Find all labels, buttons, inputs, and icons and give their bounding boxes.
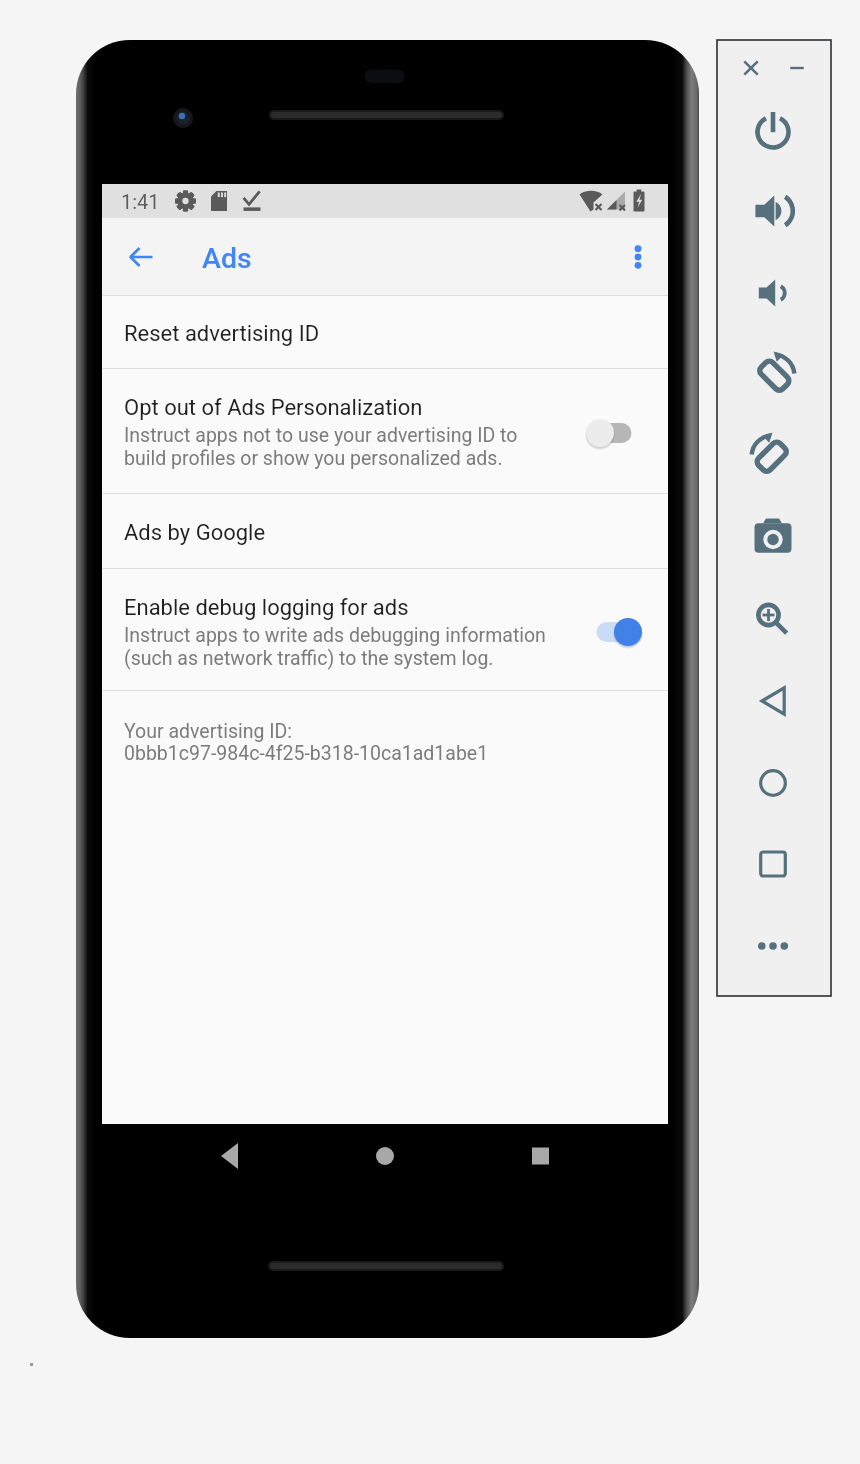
button[interactable]: Navigate up [116,232,166,282]
button[interactable]: Rotate right [747,430,799,482]
button[interactable]: Close [725,42,777,94]
button[interactable]: Overview [747,838,799,890]
staticText: Instruct apps to write ads debugging inf… [124,624,546,669]
button[interactable]: Reset advertising ID [102,296,668,368]
staticText: Your advertising ID: 0bbb1c97-984c-4f25-… [124,720,489,765]
button[interactable]: Minimize [771,42,823,94]
button[interactable]: More options [613,232,663,282]
button[interactable]: Home [747,757,799,809]
button[interactable]: More [747,920,799,972]
button[interactable]: Back [747,675,799,727]
button[interactable]: Volume down [747,267,799,319]
button[interactable]: Zoom in [747,593,799,645]
staticText: Reset advertising ID [124,321,320,347]
button[interactable]: Rotate left [747,349,799,401]
staticText: Opt out of Ads Personalization [124,395,423,421]
button[interactable]: Ads by Google [102,494,668,568]
button[interactable]: Enable debug logging for ads [102,569,668,690]
staticText: Ads by Google [124,520,266,546]
button[interactable]: Off [585,411,643,455]
button[interactable]: Take screenshot [747,512,799,564]
staticText: 1:41 [121,190,160,213]
staticText: Instruct apps not to use your advertisin… [124,424,518,469]
staticText: Enable debug logging for ads [124,595,409,621]
button[interactable]: Volume up [747,185,799,237]
button[interactable]: Power [747,106,799,158]
button[interactable]: On [585,610,643,654]
button[interactable]: Opt out of Ads Personalization [102,369,668,493]
staticText: Ads [202,242,252,275]
